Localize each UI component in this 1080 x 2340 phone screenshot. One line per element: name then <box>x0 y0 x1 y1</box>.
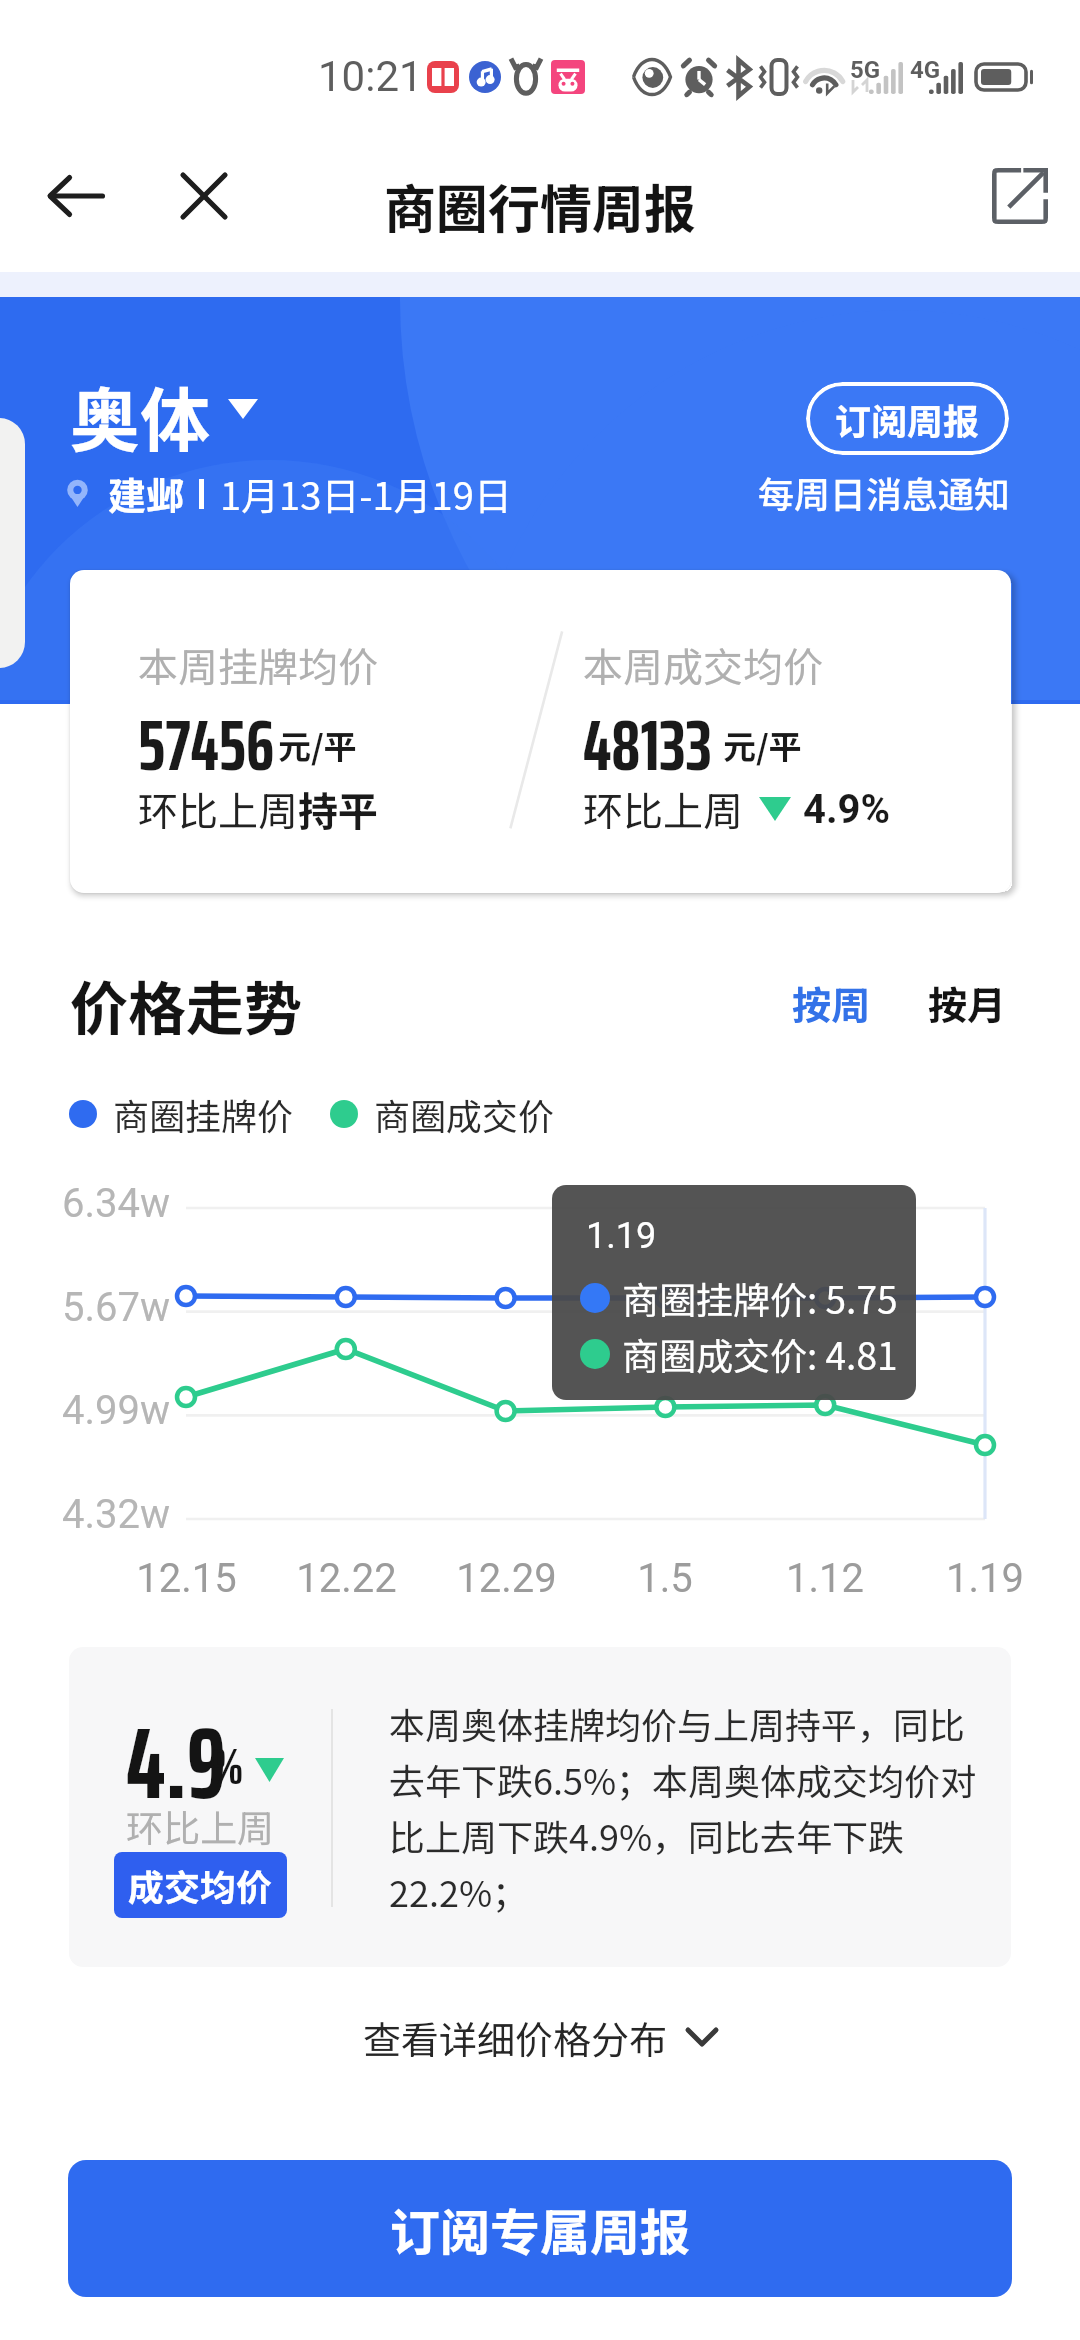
button[interactable]: 按周 <box>778 970 884 1036</box>
staticText: 环比上周 <box>583 780 743 838</box>
staticText: 1.19 <box>586 1215 657 1257</box>
staticText: 48133 <box>583 688 712 801</box>
button[interactable]: 查看详细价格分布 <box>0 1998 1080 2076</box>
staticText: 订阅专属周报 <box>390 2193 690 2265</box>
staticText: 每周日消息通知 <box>758 466 1011 518</box>
staticText: 1.5 <box>637 1555 693 1602</box>
staticText: % <box>211 1727 244 1806</box>
staticText: 12.22 <box>296 1555 397 1602</box>
staticText: 商圈成交价 <box>374 1088 555 1140</box>
staticText: 价格走势 <box>70 963 303 1047</box>
staticText: 本周成交均价 <box>583 636 823 694</box>
button[interactable]: Close <box>160 152 248 240</box>
staticText: 奥体 <box>70 365 210 466</box>
staticText: 1.19 <box>946 1555 1024 1602</box>
staticText: 成交均价 <box>128 1859 273 1911</box>
staticText: 本周挂牌均价 <box>138 636 378 694</box>
staticText: 57456 <box>138 688 275 801</box>
staticText: 环比上周 <box>126 1799 274 1853</box>
staticText: 5.67w <box>62 1284 171 1331</box>
button[interactable]: 奥体 <box>70 365 240 466</box>
staticText: 环比上周 <box>138 780 298 838</box>
staticText: 建邺 <box>108 466 185 521</box>
staticText: 6.34w <box>62 1180 171 1227</box>
staticText: 商圈行情周报 <box>384 168 697 243</box>
staticText: 10:21 <box>318 52 423 101</box>
staticText: 5G <box>850 56 881 84</box>
staticText: 按周 <box>792 975 871 1031</box>
staticText: 1.12 <box>786 1555 864 1602</box>
staticText: 商圈挂牌价: 5.75 <box>622 1271 898 1325</box>
button[interactable]: Open in new window <box>976 152 1064 240</box>
button[interactable]: 订阅专属周报 <box>68 2160 1012 2297</box>
button[interactable]: 订阅周报 <box>806 382 1009 455</box>
staticText: 元/平 <box>723 721 802 769</box>
staticText: 4.99w <box>62 1387 171 1434</box>
staticText: 4.32w <box>62 1491 171 1538</box>
button[interactable]: Back <box>32 152 120 240</box>
staticText: 按月 <box>928 975 1007 1031</box>
staticText: 12.29 <box>456 1555 557 1602</box>
staticText: 订阅周报 <box>835 393 980 445</box>
staticText: 元/平 <box>278 721 357 769</box>
staticText: 4.9% <box>803 786 891 833</box>
staticText: 本周奥体挂牌均价与上周持平，同比去年下跌6.5%；本周奥体成交均价对比上周下跌4… <box>389 1697 985 1917</box>
staticText: 查看详细价格分布 <box>363 2010 668 2065</box>
staticText: 商圈成交价: 4.81 <box>622 1327 898 1381</box>
staticText: 商圈挂牌价 <box>113 1088 294 1140</box>
staticText: 12.15 <box>136 1555 237 1602</box>
button[interactable]: 成交均价 <box>114 1852 287 1918</box>
staticText: 4.9 <box>126 1684 227 1841</box>
staticText: 1月13日-1月19日 <box>220 466 512 521</box>
button[interactable]: 按月 <box>914 970 1020 1036</box>
staticText: 4G <box>910 56 941 84</box>
staticText: 持平 <box>298 780 378 838</box>
